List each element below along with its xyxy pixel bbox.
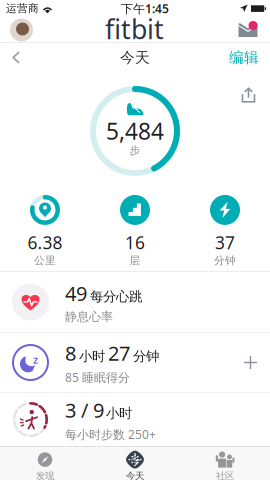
- button[interactable]: Profile: [10, 18, 33, 41]
- staticText: 6.38: [27, 231, 62, 254]
- button[interactable]: 社区: [180, 446, 270, 480]
- button[interactable]: 发现: [0, 446, 90, 480]
- staticText: 公里: [34, 254, 56, 267]
- button[interactable]: 49: [0, 272, 270, 332]
- button[interactable]: Back: [7, 45, 25, 69]
- button[interactable]: 编辑: [225, 42, 263, 72]
- button[interactable]: 37: [180, 188, 270, 261]
- staticText: 步: [129, 144, 140, 157]
- staticText: 今天: [126, 470, 144, 480]
- staticText: 小时: [79, 348, 105, 365]
- staticText: fitbit: [105, 11, 164, 47]
- staticText: 发现: [36, 470, 54, 480]
- staticText: 层: [129, 254, 140, 267]
- staticText: z: [33, 352, 38, 367]
- staticText: 27: [108, 340, 130, 366]
- staticText: 分钟: [133, 348, 159, 365]
- staticText: 下午1:45: [121, 0, 169, 16]
- staticText: 社区: [216, 470, 234, 480]
- staticText: 每小时步数 250+: [65, 426, 156, 442]
- staticText: 运营商: [6, 2, 39, 15]
- staticText: 16: [125, 231, 145, 254]
- staticText: 8: [65, 340, 76, 366]
- button[interactable]: 今天: [90, 446, 180, 480]
- staticText: 每分心跳: [90, 288, 142, 305]
- button[interactable]: 16: [90, 188, 180, 261]
- staticText: 49: [65, 280, 87, 306]
- button[interactable]: Messages: [236, 21, 260, 39]
- staticText: 5,484: [106, 116, 164, 146]
- button[interactable]: Share: [235, 81, 262, 110]
- staticText: 分钟: [214, 254, 236, 267]
- staticText: 静息心率: [65, 309, 113, 324]
- staticText: 今天: [120, 48, 150, 66]
- staticText: 37: [215, 231, 235, 254]
- button[interactable]: 6.38: [0, 188, 90, 261]
- staticText: 编辑: [229, 48, 259, 66]
- staticText: 85 睡眠得分: [65, 369, 130, 385]
- staticText: 小时: [106, 405, 132, 422]
- button[interactable]: 3 / 9: [0, 393, 270, 446]
- staticText: 3 / 9: [65, 397, 104, 423]
- button[interactable]: z: [0, 333, 270, 392]
